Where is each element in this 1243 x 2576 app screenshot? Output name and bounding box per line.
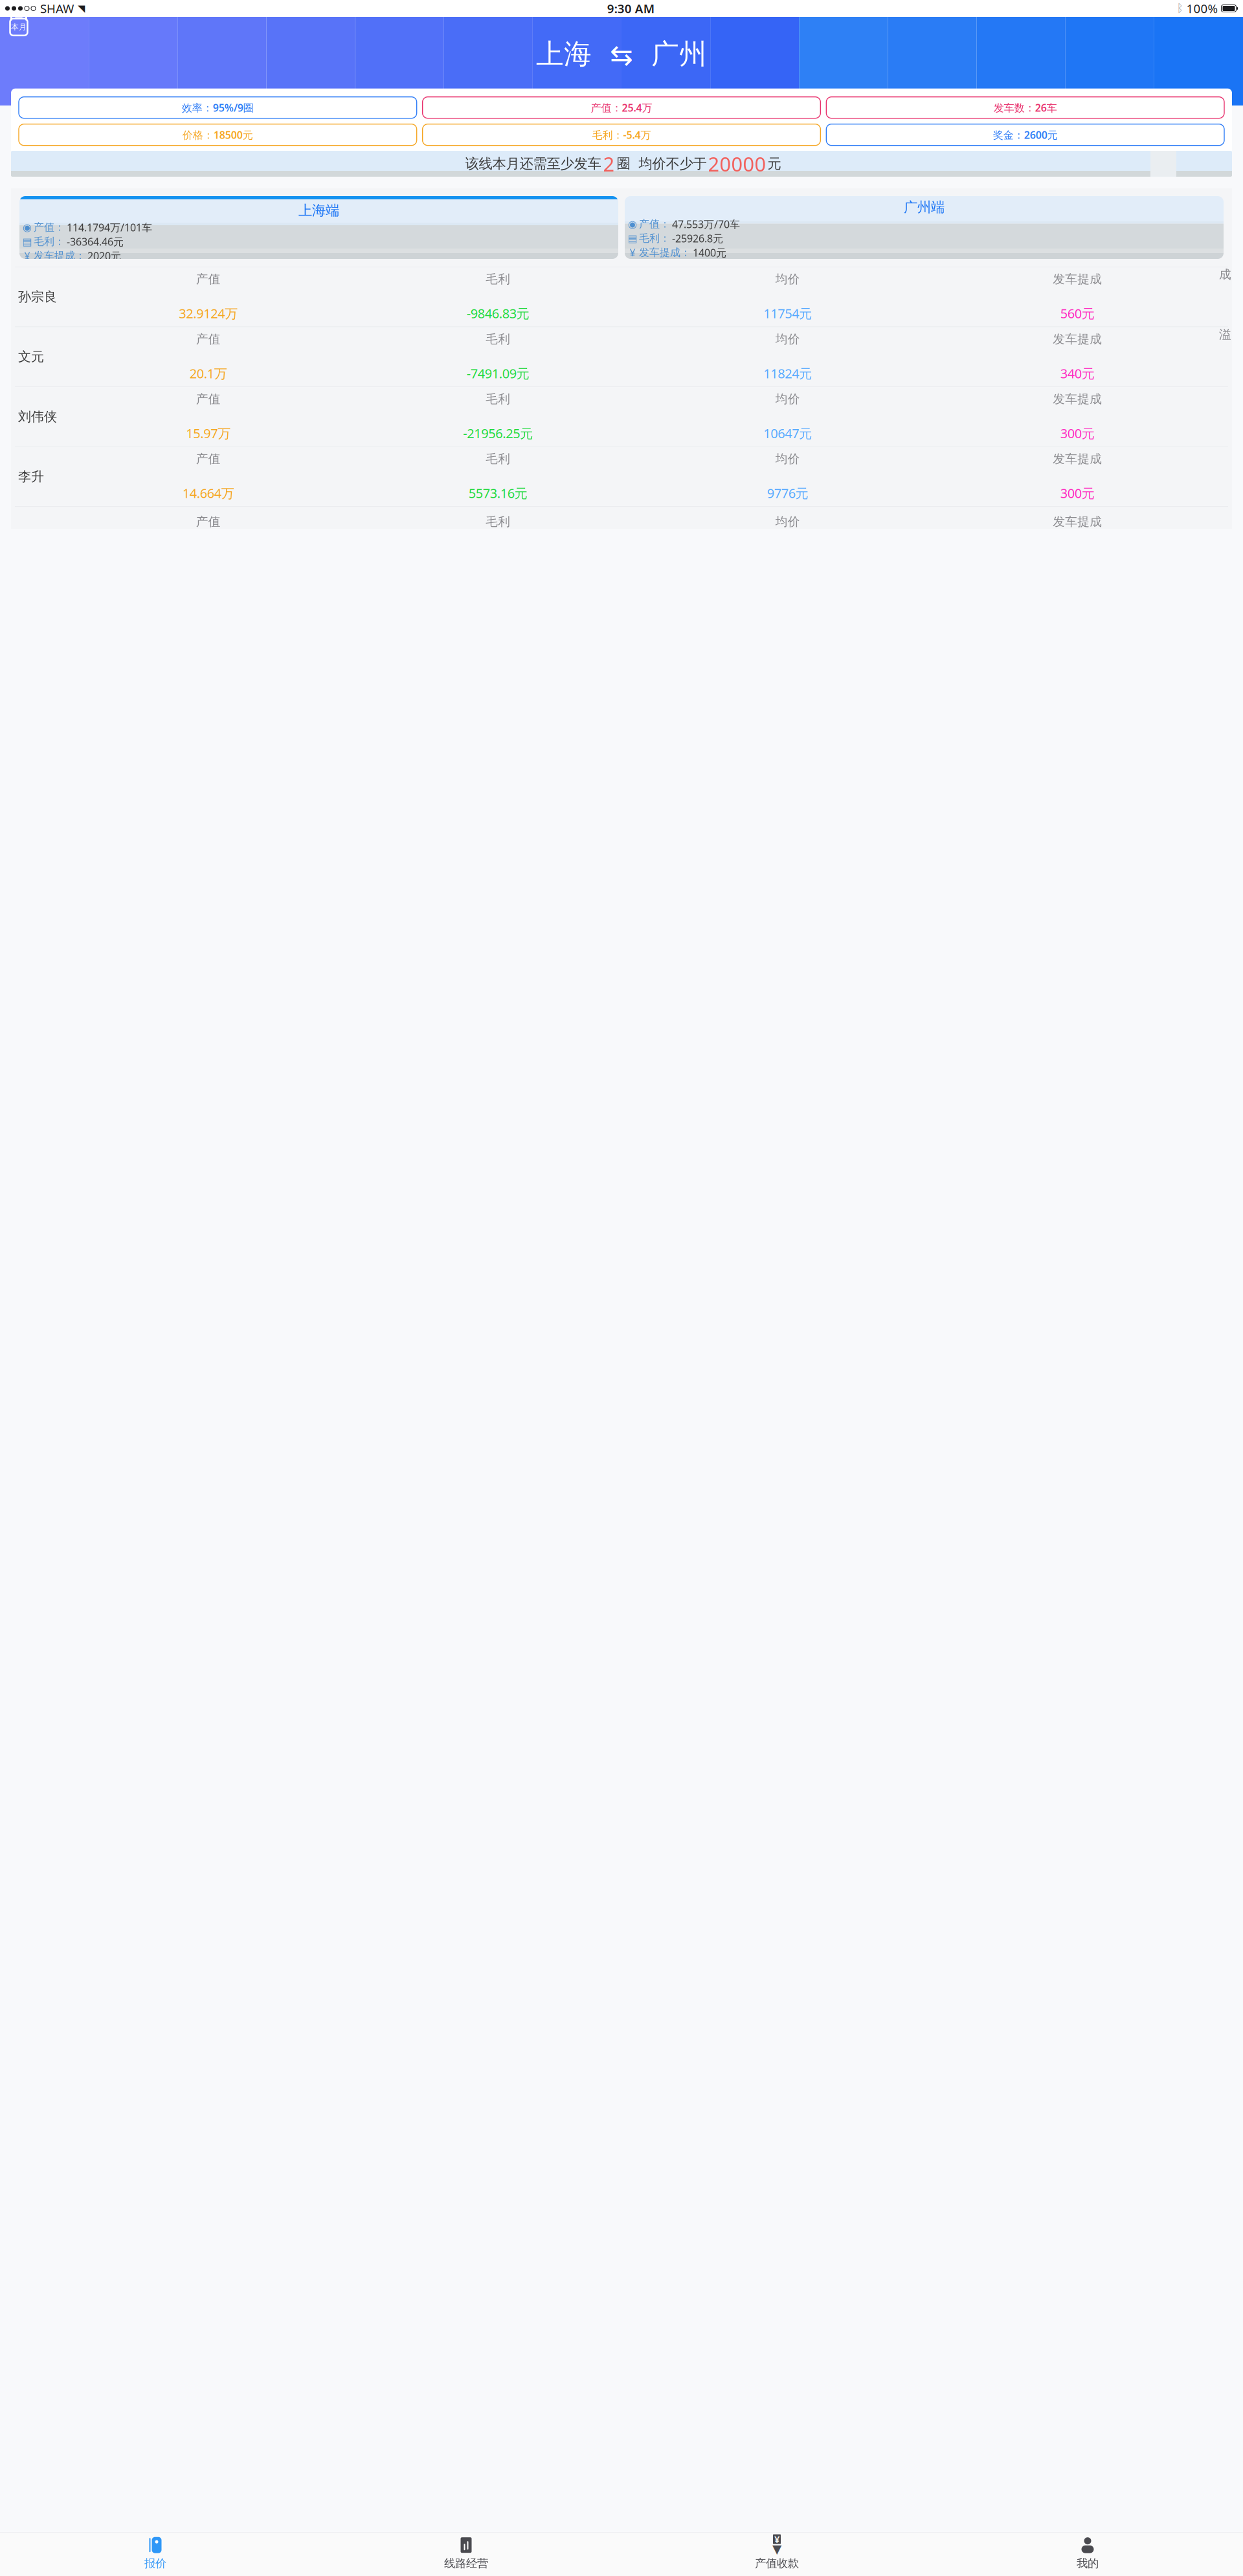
- staticText: ◥: [78, 3, 85, 14]
- button[interactable]: 报价: [0, 2532, 311, 2574]
- staticText: 产值收款: [755, 2556, 799, 2570]
- staticText: 9776元: [767, 485, 808, 502]
- button[interactable]: 刘伟侠: [15, 387, 1228, 446]
- staticText: 均价: [775, 514, 800, 529]
- staticText: -25926.8元: [672, 231, 723, 245]
- staticText: 20000: [708, 151, 766, 177]
- staticText: 产值：: [639, 218, 670, 230]
- staticText: 产值: [196, 332, 221, 347]
- staticText: 元: [767, 155, 781, 172]
- staticText: 14.664万: [182, 485, 234, 502]
- staticText: 报价: [144, 2556, 166, 2570]
- button[interactable]: 孙宗良: [15, 267, 1228, 327]
- staticText: 本月: [11, 22, 27, 32]
- staticText: 发车提成: [1053, 392, 1102, 406]
- staticText: 11754元: [763, 305, 812, 322]
- button[interactable]: 本月: [9, 14, 28, 36]
- staticText: -21956.25元: [463, 425, 533, 442]
- staticText: ◉: [23, 221, 32, 233]
- staticText: ¥: [774, 2533, 779, 2546]
- staticText: 均价: [775, 272, 800, 287]
- button[interactable]: 奖金：2600元: [826, 124, 1224, 145]
- staticText: 发车提成: [1053, 332, 1102, 347]
- button[interactable]: ¥: [621, 2532, 932, 2574]
- staticText: ¥: [630, 246, 635, 259]
- staticText: -36364.46元: [67, 235, 124, 248]
- staticText: 20.1万: [190, 365, 227, 382]
- staticText: 毛利: [486, 392, 510, 406]
- button[interactable]: 产值：25.4万: [423, 97, 821, 118]
- staticText: 发车数：26车: [994, 101, 1057, 114]
- staticText: 产值: [196, 392, 221, 406]
- staticText: 2: [603, 151, 615, 177]
- staticText: 毛利：: [639, 232, 670, 245]
- staticText: 圈: [617, 155, 630, 172]
- staticText: 孙宗良: [18, 289, 57, 305]
- staticText: ▤: [628, 232, 637, 244]
- staticText: 均价: [775, 392, 800, 406]
- staticText: 刘伟侠: [18, 409, 57, 425]
- staticText: 毛利: [486, 514, 510, 529]
- button[interactable]: 毛利：-5.4万: [423, 124, 821, 145]
- staticText: 线路经营: [444, 2556, 488, 2570]
- staticText: 李升: [18, 469, 44, 485]
- button[interactable]: 我的: [932, 2532, 1243, 2574]
- staticText: 毛利：: [34, 235, 65, 248]
- staticText: 发车提成：: [639, 246, 691, 259]
- staticText: ¥: [24, 249, 30, 263]
- staticText: 均价: [775, 452, 800, 466]
- button[interactable]: 价格：18500元: [19, 124, 417, 145]
- staticText: 毛利: [486, 452, 510, 466]
- staticText: 300元: [1060, 485, 1095, 502]
- staticText: 产值：: [34, 221, 65, 234]
- button[interactable]: 文元: [15, 327, 1228, 387]
- button[interactable]: 广州端: [625, 196, 1224, 259]
- staticText: 114.1794万/101车: [67, 220, 152, 234]
- button[interactable]: 效率：95%/9圈: [19, 97, 417, 118]
- button[interactable]: 发车数：26车: [826, 97, 1224, 118]
- staticText: 该线本月还需至少发车: [465, 155, 601, 172]
- staticText: 我的: [1077, 2556, 1099, 2570]
- staticText: 1400元: [693, 246, 726, 259]
- staticText: -9846.83元: [467, 305, 529, 322]
- staticText: 15.97万: [186, 425, 231, 442]
- staticText: ◉: [628, 218, 637, 230]
- staticText: 9:30 AM: [607, 0, 654, 16]
- staticText: ▤: [22, 236, 32, 247]
- staticText: 11824元: [763, 365, 812, 382]
- staticText: 上海 ⇆ 广州: [536, 37, 707, 71]
- staticText: 5573.16元: [469, 485, 527, 502]
- staticText: 100%: [1186, 0, 1218, 16]
- staticText: 奖金：2600元: [993, 128, 1058, 142]
- staticText: 560元: [1060, 305, 1095, 322]
- staticText: 2020元: [87, 249, 121, 263]
- staticText: 效率：: [34, 278, 65, 291]
- staticText: SHAW: [40, 0, 74, 16]
- staticText: 效率：95%/9圈: [182, 101, 254, 114]
- button[interactable]: 线路经营: [311, 2532, 621, 2574]
- staticText: -7491.09元: [467, 365, 529, 382]
- staticText: 10647元: [763, 425, 812, 442]
- staticText: 毛利: [486, 272, 510, 287]
- staticText: 300元: [1060, 425, 1095, 442]
- staticText: ᛒ: [1177, 3, 1183, 14]
- button[interactable]: 上海端: [19, 196, 618, 259]
- staticText: 发车提成: [1053, 452, 1102, 466]
- staticText: 产值：25.4万: [591, 101, 652, 114]
- staticText: 发车提成：: [34, 249, 85, 262]
- button[interactable]: 李升: [15, 446, 1228, 506]
- staticText: 文元: [18, 349, 44, 365]
- staticText: 均价: [775, 332, 800, 347]
- staticText: 产值: [196, 272, 221, 287]
- staticText: 溢: [1219, 327, 1231, 342]
